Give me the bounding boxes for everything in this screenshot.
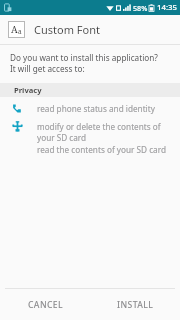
- other: Phone permission: [12, 103, 25, 114]
- button[interactable]: Storage permission: [0, 121, 180, 155]
- button[interactable]: INSTALL: [90, 289, 180, 320]
- button[interactable]: CANCEL: [0, 289, 90, 320]
- staticText: modify or delete the contents of your SD…: [37, 121, 168, 143]
- staticText: read the contents of your SD card: [37, 144, 166, 155]
- staticText: INSTALL: [117, 299, 154, 311]
- staticText: Custom Font: [34, 22, 100, 37]
- other: Storage permission: [12, 121, 25, 132]
- staticText: a: [18, 27, 22, 36]
- staticText: Privacy: [14, 85, 42, 95]
- staticText: read phone status and identity: [37, 103, 155, 114]
- button[interactable]: Phone permission: [0, 103, 180, 114]
- staticText: 14:35: [157, 2, 177, 13]
- staticText: A: [11, 23, 18, 36]
- staticText: CANCEL: [28, 299, 63, 311]
- staticText: Do you want to install this application?…: [10, 52, 164, 74]
- staticText: 58%: [133, 3, 148, 13]
